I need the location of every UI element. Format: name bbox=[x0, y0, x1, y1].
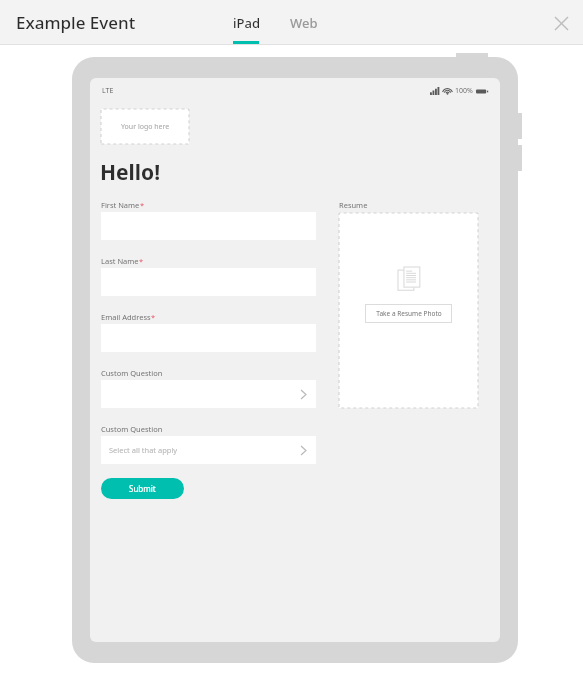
staticText: Select all that apply bbox=[109, 445, 178, 455]
button[interactable]: Close bbox=[547, 9, 575, 37]
staticText: First Name bbox=[101, 200, 140, 210]
staticText: Custom Question bbox=[101, 368, 163, 378]
staticText: * bbox=[151, 312, 156, 322]
staticText: Web bbox=[290, 14, 318, 32]
staticText: Email Address bbox=[101, 312, 151, 322]
button[interactable]: Web bbox=[282, 0, 326, 45]
staticText: LTE bbox=[102, 86, 114, 96]
staticText: Your logo here bbox=[121, 122, 170, 132]
button[interactable]: Submit bbox=[101, 478, 184, 499]
staticText: Submit bbox=[129, 483, 156, 494]
staticText: Resume bbox=[339, 200, 368, 210]
button[interactable] bbox=[101, 380, 316, 408]
staticText: * bbox=[139, 256, 144, 266]
button[interactable]: iPad bbox=[224, 0, 268, 45]
staticText: Custom Question bbox=[101, 424, 163, 434]
staticText: 100% bbox=[455, 86, 473, 96]
button[interactable]: Take a Resume Photo bbox=[365, 304, 452, 323]
staticText: Hello! bbox=[100, 158, 161, 187]
button[interactable]: Select all that apply bbox=[101, 436, 316, 464]
staticText: Take a Resume Photo bbox=[376, 309, 442, 318]
staticText: Example Event bbox=[16, 11, 136, 34]
staticText: iPad bbox=[233, 14, 260, 32]
staticText: Last Name bbox=[101, 256, 139, 266]
staticText: * bbox=[140, 200, 145, 210]
